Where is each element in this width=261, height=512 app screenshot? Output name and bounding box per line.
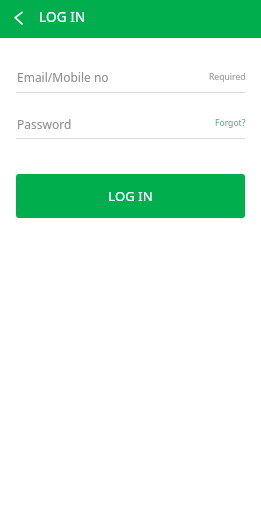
staticText: Forgot?	[215, 117, 246, 129]
staticText: Password	[17, 116, 72, 132]
staticText: LOG IN	[108, 187, 153, 205]
staticText: Email/Mobile no	[17, 69, 109, 85]
button[interactable]: Back	[6, 6, 32, 32]
staticText: LOG IN	[39, 8, 86, 26]
button[interactable]: Forgot?	[16, 116, 246, 130]
button[interactable]	[16, 108, 245, 139]
button[interactable]: Required	[16, 70, 246, 84]
staticText: Required	[209, 71, 246, 83]
button[interactable]	[16, 62, 245, 93]
button[interactable]: LOG IN	[16, 174, 245, 218]
